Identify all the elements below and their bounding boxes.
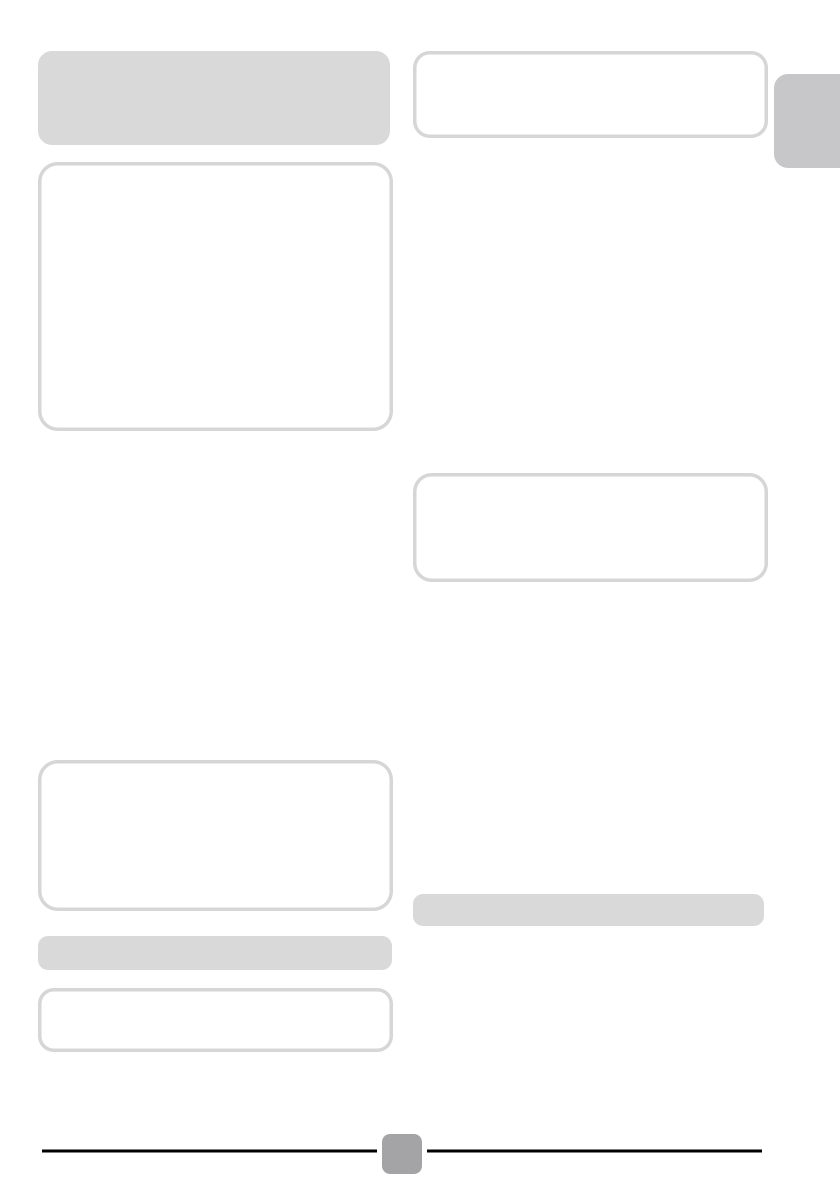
button[interactable]: Card placeholder xyxy=(0,0,840,1190)
button[interactable]: Field placeholder xyxy=(0,0,840,1190)
button[interactable]: Card placeholder xyxy=(0,0,840,1190)
button[interactable]: Header placeholder xyxy=(0,0,840,1190)
button[interactable]: Label placeholder xyxy=(0,0,840,1190)
button[interactable]: Card placeholder xyxy=(0,0,840,1190)
button[interactable]: Card placeholder xyxy=(0,0,840,1190)
button[interactable]: Label placeholder xyxy=(0,0,840,1190)
